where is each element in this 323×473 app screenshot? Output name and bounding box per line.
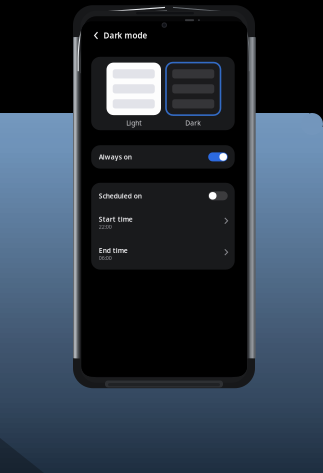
button[interactable]: Dark bbox=[166, 63, 220, 127]
button[interactable]: Start time bbox=[91, 215, 235, 239]
staticText: 06:00 bbox=[99, 254, 112, 262]
staticText: Always on bbox=[99, 152, 132, 161]
button[interactable]: End time bbox=[91, 246, 235, 268]
staticText: Dark mode bbox=[104, 30, 148, 41]
staticText: Start time bbox=[99, 215, 133, 224]
staticText: Light bbox=[126, 119, 141, 127]
staticText: Dark bbox=[185, 119, 201, 127]
staticText: 22:00 bbox=[99, 223, 112, 230]
button[interactable]: Light bbox=[106, 63, 161, 127]
button[interactable]: Dark mode bbox=[81, 26, 247, 44]
staticText: Scheduled on bbox=[99, 191, 142, 200]
button[interactable]: Always on bbox=[91, 145, 235, 169]
staticText: End time bbox=[99, 246, 128, 255]
button[interactable]: Scheduled on bbox=[91, 183, 235, 209]
